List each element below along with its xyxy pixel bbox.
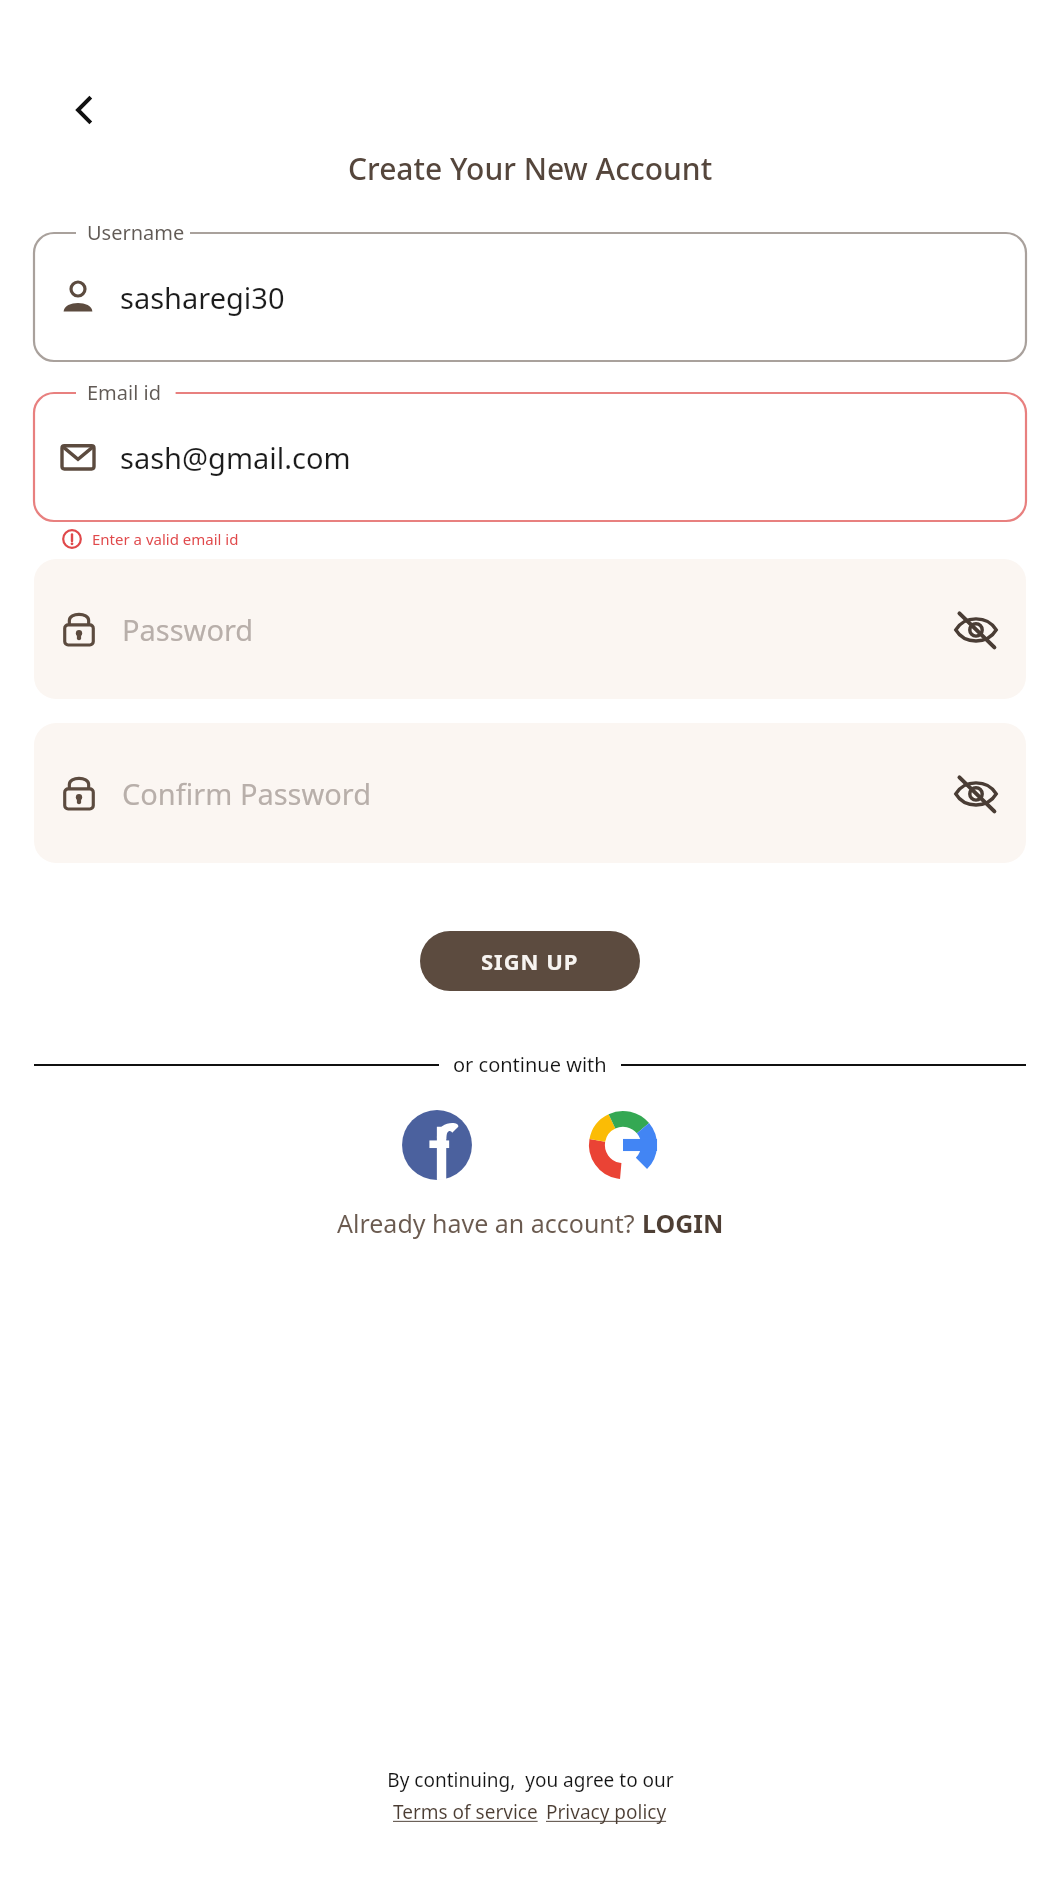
button[interactable]: Continue with Facebook [398, 1106, 476, 1184]
button[interactable]: SIGN UP [420, 931, 640, 991]
staticText: Email id [87, 379, 162, 406]
staticText: Enter a valid email id [92, 529, 239, 549]
button[interactable]: Show password [944, 597, 1008, 661]
button[interactable]: Terms of service [393, 1799, 538, 1825]
button[interactable]: sash@gmail.com [34, 393, 1026, 521]
staticText: or continue with [453, 1051, 607, 1078]
button[interactable]: Back [62, 88, 106, 132]
button[interactable]: Privacy policy [546, 1799, 667, 1825]
staticText: By continuing, you agree to our [387, 1767, 674, 1793]
staticText: Already have an account? [337, 1206, 642, 1240]
button[interactable]: Password [34, 559, 1026, 699]
button[interactable]: Continue with Google [584, 1106, 662, 1184]
staticText: sash@gmail.com [120, 438, 351, 477]
button[interactable]: Confirm Password [34, 723, 1026, 863]
staticText: Password [122, 610, 254, 649]
staticText: Confirm Password [122, 774, 372, 813]
staticText: LOGIN [642, 1206, 724, 1240]
staticText: sasharegi30 [120, 278, 285, 317]
button[interactable]: Already have an account? [0, 1206, 1060, 1240]
button[interactable]: Show password [944, 761, 1008, 825]
staticText: Username [87, 219, 185, 246]
staticText: Create Your New Account [348, 148, 713, 189]
button[interactable]: sasharegi30 [34, 233, 1026, 361]
staticText: SIGN UP [481, 946, 579, 976]
